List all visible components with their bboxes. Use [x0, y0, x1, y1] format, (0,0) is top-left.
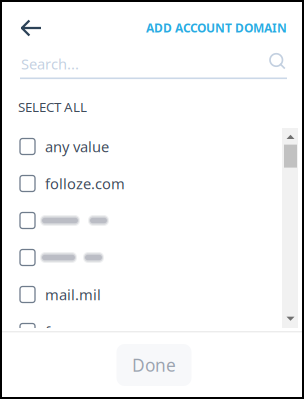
staticText: f — [45, 322, 50, 341]
staticText: any value — [45, 137, 109, 156]
button[interactable]: SELECT ALL — [0, 94, 87, 120]
button[interactable]: mail.mil — [1, 276, 273, 313]
staticText: Done — [132, 353, 176, 376]
button[interactable]: any value — [1, 128, 273, 165]
staticText: SELECT ALL — [18, 98, 87, 116]
button[interactable]: folloze.com — [1, 165, 273, 202]
button[interactable] — [1, 239, 273, 276]
staticText: mail.mil — [45, 285, 101, 304]
staticText: folloze.com — [45, 174, 125, 193]
staticText: ADD ACCOUNT DOMAIN — [146, 20, 287, 36]
button[interactable]: f — [1, 313, 273, 350]
button[interactable] — [1, 202, 273, 239]
button[interactable]: Done — [116, 344, 191, 386]
button[interactable]: ADD ACCOUNT DOMAIN — [146, 12, 304, 44]
staticText: Search... — [21, 54, 79, 73]
button[interactable]: Back — [0, 11, 56, 45]
